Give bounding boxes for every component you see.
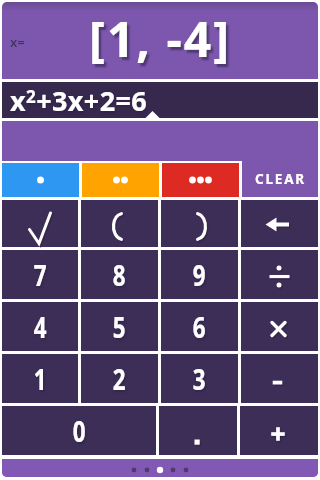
button[interactable]	[241, 302, 318, 351]
staticText: 5	[113, 308, 126, 346]
button[interactable]: 4	[2, 302, 78, 351]
staticText: 4	[34, 308, 47, 346]
button[interactable]	[162, 163, 239, 197]
button[interactable]	[2, 200, 78, 247]
button[interactable]	[81, 200, 158, 247]
button[interactable]: CLEAR	[242, 161, 318, 197]
staticText: x=	[10, 33, 25, 51]
staticText: 9	[193, 256, 206, 294]
staticText: x2+3x+2=6	[10, 82, 148, 118]
button[interactable]	[159, 406, 237, 455]
staticText: 6	[193, 308, 206, 346]
button[interactable]	[241, 354, 318, 403]
button[interactable]	[2, 163, 79, 197]
button[interactable]: 7	[2, 250, 78, 299]
staticText: CLEAR	[255, 170, 306, 188]
button[interactable]: 3	[161, 354, 238, 403]
button[interactable]: x2+3x+2=6	[2, 82, 318, 118]
staticText: 3	[193, 360, 206, 398]
staticText: 2	[113, 360, 126, 398]
staticText: 8	[113, 256, 126, 294]
button[interactable]: 6	[161, 302, 238, 351]
button[interactable]: 9	[161, 250, 238, 299]
button[interactable]: 1	[2, 354, 78, 403]
button[interactable]: 2	[81, 354, 158, 403]
staticText: 0	[73, 412, 86, 450]
button[interactable]: 8	[81, 250, 158, 299]
button[interactable]	[241, 250, 318, 299]
button[interactable]	[241, 200, 318, 247]
button[interactable]: 5	[81, 302, 158, 351]
staticText: 1	[34, 360, 47, 398]
button[interactable]	[240, 406, 318, 455]
staticText: 7	[34, 256, 47, 294]
button[interactable]	[161, 200, 238, 247]
staticText: [1, -4]	[89, 6, 232, 71]
button[interactable]: 0	[2, 406, 156, 455]
button[interactable]	[82, 163, 159, 197]
